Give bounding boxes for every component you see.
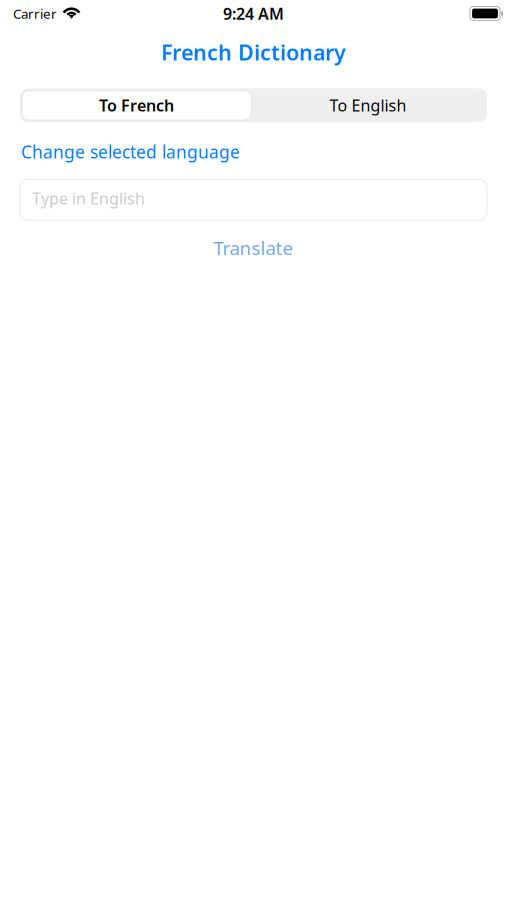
- staticText: Carrier: [13, 5, 57, 22]
- button[interactable]: Change selected language: [21, 135, 240, 168]
- staticText: French Dictionary: [161, 38, 346, 66]
- button[interactable]: Translate: [197, 220, 309, 270]
- staticText: To French: [99, 95, 174, 116]
- staticText: Type in English: [32, 188, 145, 209]
- staticText: To English: [329, 95, 406, 116]
- staticText: Translate: [213, 235, 293, 260]
- staticText: 9:24 AM: [223, 3, 284, 24]
- staticText: Change selected language: [21, 140, 240, 163]
- button[interactable]: To English: [251, 91, 485, 120]
- button[interactable]: To French: [22, 91, 251, 120]
